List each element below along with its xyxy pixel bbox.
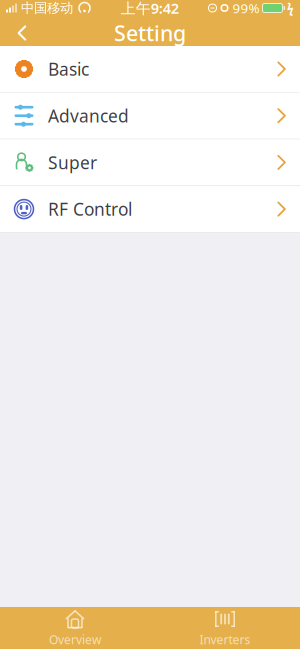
staticText: Basic [48,57,89,80]
button[interactable]: Inverters [150,607,300,649]
staticText: 上午9:42 [121,0,179,18]
staticText: RF Control [48,198,132,221]
button[interactable]: Back [0,18,44,48]
button[interactable]: Overview [0,607,150,649]
staticText: Super [48,151,97,174]
staticText: ϟ [287,0,294,16]
button[interactable]: Advanced [0,93,300,139]
staticText: Setting [114,19,186,47]
staticText: 中国移动 [21,0,73,16]
staticText: 99% [232,0,259,17]
button[interactable]: Basic [0,46,300,93]
staticText: Advanced [48,104,129,127]
staticText: Overview [49,631,101,647]
button[interactable]: RF Control [0,186,300,233]
button[interactable]: Super [0,139,300,186]
staticText: Inverters [199,631,250,647]
